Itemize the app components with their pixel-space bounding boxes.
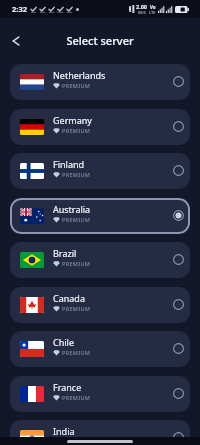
staticText: PREMIUM [62, 349, 91, 356]
staticText: Germany [53, 114, 92, 126]
staticText: PREMIUM [62, 216, 91, 223]
button[interactable]: India [10, 420, 190, 445]
staticText: Finland [53, 158, 85, 170]
staticText: India [53, 425, 75, 437]
button[interactable]: Brazil [10, 242, 190, 278]
staticText: KB/S [138, 10, 146, 15]
staticText: Brazil [53, 247, 77, 259]
staticText: Canada [53, 292, 85, 304]
staticText: Select server [66, 33, 134, 48]
staticText: PREMIUM [62, 305, 91, 312]
staticText: Vo [150, 4, 156, 10]
button[interactable]: Chile [10, 331, 190, 367]
staticText: Chile [53, 336, 74, 348]
button[interactable]: Finland [10, 153, 190, 189]
staticText: PREMIUM [62, 438, 91, 445]
staticText: PREMIUM [62, 127, 91, 134]
button[interactable]: Germany [10, 109, 190, 145]
staticText: 2.00 [136, 3, 147, 10]
button[interactable]: Canada [10, 287, 190, 323]
button[interactable]: Netherlands [10, 64, 190, 100]
staticText: PREMIUM [62, 82, 91, 89]
staticText: LTE [149, 10, 156, 15]
staticText: PREMIUM [62, 260, 91, 267]
button[interactable]: Back [5, 30, 27, 52]
staticText: Australia [53, 203, 91, 215]
staticText: PREMIUM [62, 394, 91, 401]
staticText: 2:32 [12, 4, 27, 14]
staticText: PREMIUM [62, 171, 91, 178]
button[interactable]: Australia [10, 198, 190, 234]
staticText: Netherlands [53, 69, 106, 81]
staticText: France [53, 381, 82, 393]
button[interactable]: France [10, 376, 190, 412]
